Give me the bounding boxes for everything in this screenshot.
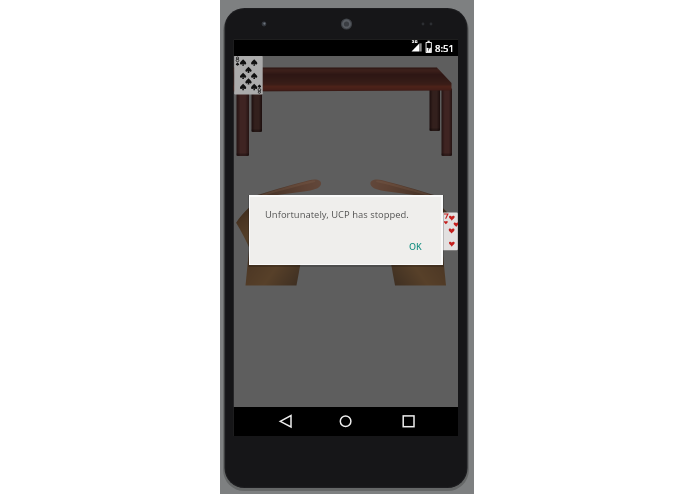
button[interactable]: Home [326, 407, 365, 436]
button[interactable]: Recent apps [389, 407, 428, 436]
staticText: Unfortunately, UCP has stopped. [265, 208, 409, 221]
staticText: 8:51 [435, 42, 455, 55]
button[interactable]: Back [266, 407, 305, 436]
staticText: OK [409, 240, 422, 252]
button[interactable]: OK [409, 240, 422, 252]
